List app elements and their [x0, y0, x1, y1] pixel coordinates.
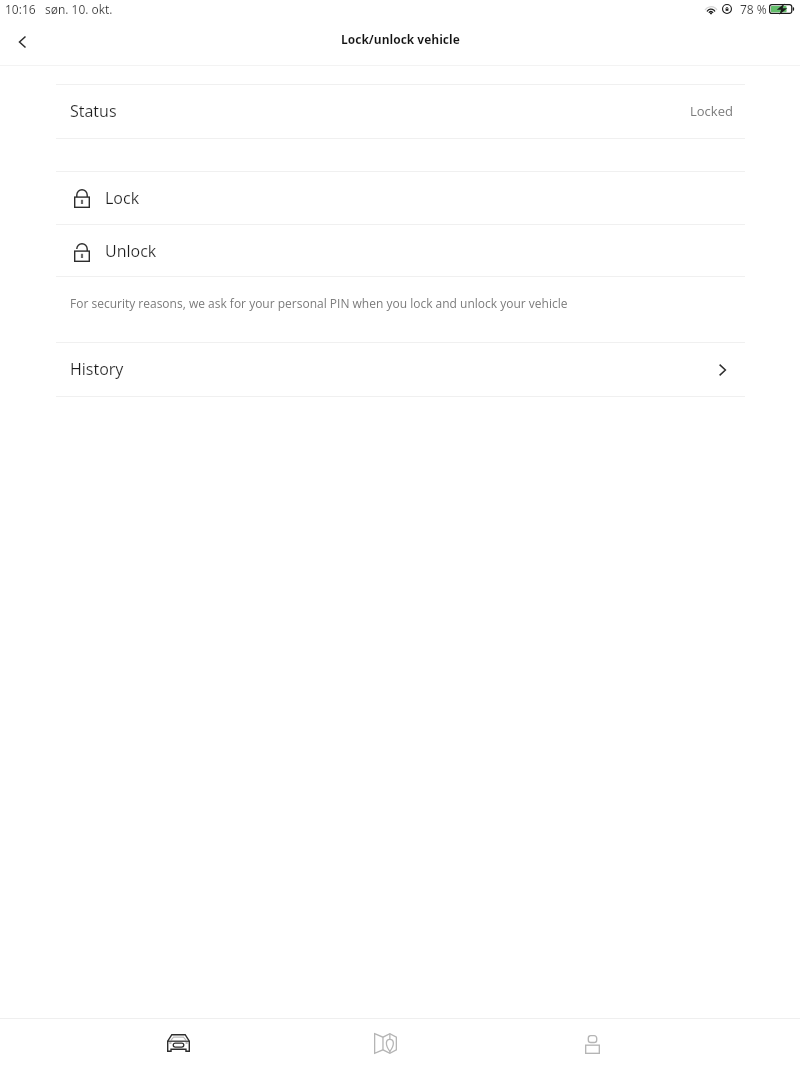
button[interactable]: Profile: [489, 1019, 696, 1067]
button[interactable]: Unlock: [0, 224, 800, 276]
button[interactable]: Back: [6, 26, 38, 58]
staticText: 10:16: [5, 1, 36, 17]
staticText: 78 %: [740, 1, 767, 17]
button[interactable]: Status: [0, 84, 800, 138]
button[interactable]: Map: [282, 1019, 489, 1067]
staticText: Lock/unlock vehicle: [341, 31, 460, 47]
staticText: History: [70, 358, 124, 380]
button[interactable]: History: [0, 342, 800, 396]
staticText: Lock: [105, 187, 140, 209]
staticText: For security reasons, we ask for your pe…: [70, 295, 568, 311]
staticText: Locked: [690, 102, 733, 120]
button[interactable]: Vehicle: [75, 1019, 282, 1067]
staticText: søn. 10. okt.: [45, 1, 113, 17]
staticText: Status: [70, 100, 117, 122]
staticText: Unlock: [105, 240, 157, 262]
button[interactable]: Lock: [0, 171, 800, 224]
